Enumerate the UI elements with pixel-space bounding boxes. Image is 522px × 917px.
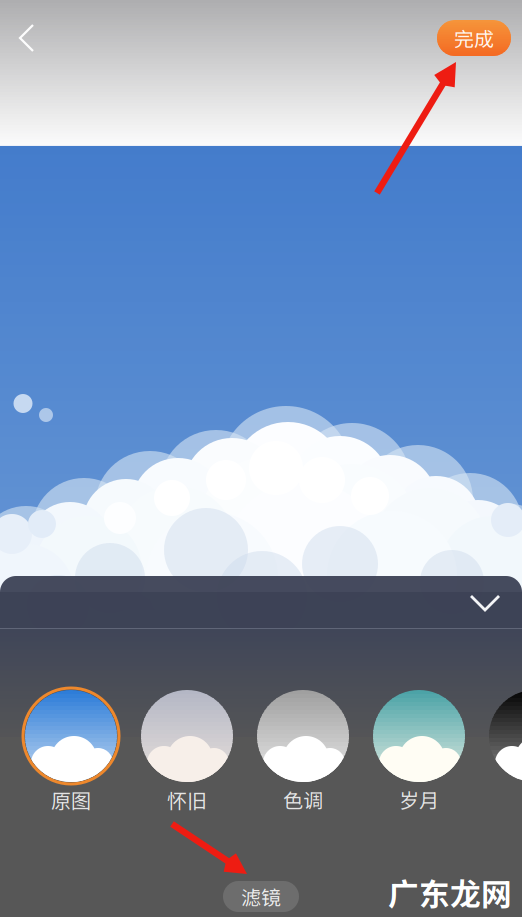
staticText: 色调 bbox=[283, 785, 323, 814]
staticText: 原图 bbox=[51, 785, 91, 814]
staticText: 滤镜 bbox=[241, 882, 281, 911]
staticText: 完成 bbox=[454, 23, 494, 52]
button[interactable]: Collapse bbox=[454, 576, 516, 628]
staticText: 广东龙网 bbox=[388, 870, 512, 914]
button[interactable]: 完成 bbox=[437, 20, 511, 56]
staticText: 岁月 bbox=[399, 785, 439, 814]
button[interactable]: 怀旧 bbox=[139, 688, 235, 828]
button[interactable]: 原图 bbox=[23, 688, 119, 828]
button[interactable]: 岁月 bbox=[371, 688, 467, 828]
button[interactable]: Back bbox=[0, 11, 54, 65]
button[interactable]: 滤镜 bbox=[223, 881, 299, 912]
staticText: 怀旧 bbox=[167, 785, 207, 814]
button[interactable] bbox=[487, 688, 522, 828]
button[interactable]: 色调 bbox=[255, 688, 351, 828]
